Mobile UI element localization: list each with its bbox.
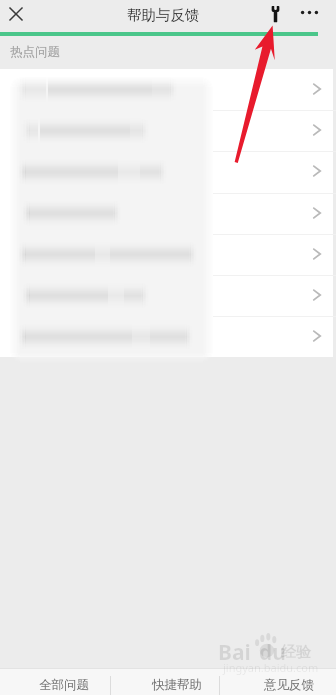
staticText: 全部问题 <box>39 677 89 693</box>
staticText: du <box>259 638 286 667</box>
staticText: 热点问题 <box>10 44 60 60</box>
button[interactable]: Close <box>4 2 28 26</box>
button[interactable] <box>0 69 333 110</box>
button[interactable] <box>0 193 333 234</box>
staticText: jingyan.baidu.com <box>223 660 319 675</box>
button[interactable] <box>0 316 333 357</box>
staticText: 经验 <box>281 643 311 662</box>
button[interactable]: 快捷帮助 <box>143 669 211 695</box>
button[interactable]: 意见反馈 <box>255 669 323 695</box>
button[interactable]: More options <box>298 1 321 24</box>
staticText: 帮助与反馈 <box>127 6 200 24</box>
button[interactable] <box>0 110 333 151</box>
button[interactable] <box>0 151 333 192</box>
button[interactable] <box>0 234 333 275</box>
button[interactable]: Tools <box>264 3 287 26</box>
staticText: 意见反馈 <box>264 677 314 693</box>
button[interactable] <box>0 275 333 316</box>
button[interactable]: 全部问题 <box>30 669 98 695</box>
staticText: 快捷帮助 <box>152 677 202 693</box>
staticText: Bai <box>218 638 251 667</box>
